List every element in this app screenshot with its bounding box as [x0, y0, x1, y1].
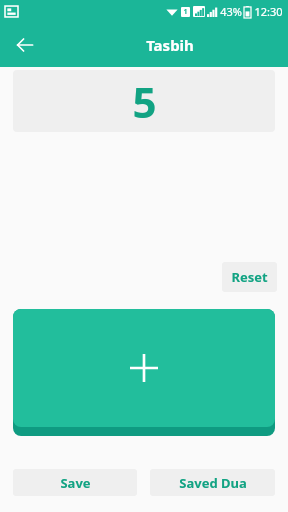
staticText: Reset: [231, 268, 268, 286]
staticText: Tasbih: [146, 35, 194, 55]
button[interactable]: Save: [13, 469, 137, 496]
staticText: Saved Dua: [179, 474, 247, 492]
button[interactable]: Back: [8, 28, 42, 62]
button[interactable]: Saved Dua: [150, 469, 275, 496]
staticText: 12:30: [254, 4, 283, 19]
staticText: 43%: [220, 4, 242, 19]
staticText: Save: [60, 474, 91, 492]
staticText: 1: [183, 7, 188, 17]
staticText: 5: [132, 73, 157, 130]
button[interactable]: Increment count: [13, 309, 275, 427]
button[interactable]: Reset: [222, 262, 277, 292]
